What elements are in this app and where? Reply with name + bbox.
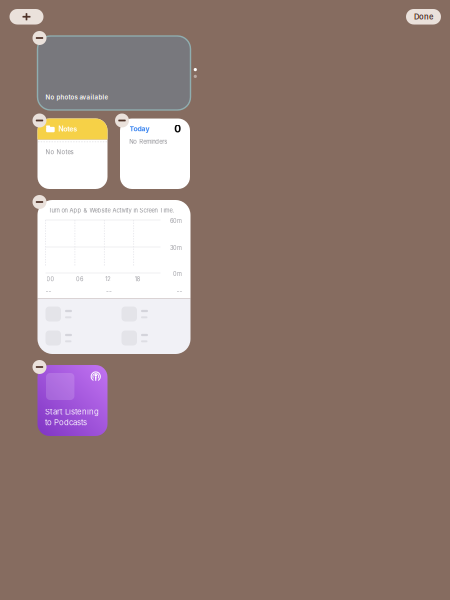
staticText: No Notes (45, 148, 73, 156)
staticText: 00 (46, 276, 54, 283)
button[interactable]: Remove widget (32, 195, 46, 209)
staticText: 18 (135, 276, 140, 283)
button[interactable]: Done (406, 9, 441, 24)
staticText: 0 (174, 123, 181, 135)
staticText: No Reminders (129, 138, 167, 145)
staticText: 30m (170, 245, 182, 251)
staticText: Turn on App & Website Activity in Screen… (48, 207, 174, 214)
staticText: 60m (170, 218, 182, 224)
staticText: 06 (76, 276, 83, 283)
staticText: Start Listening (45, 407, 99, 416)
button[interactable]: Remove widget (32, 113, 46, 127)
staticText: No photos available (45, 94, 108, 101)
staticText: -- (176, 287, 182, 295)
button[interactable]: Remove widget (32, 360, 46, 374)
staticText: 0m (173, 271, 182, 277)
staticText: to Podcasts (45, 418, 87, 427)
staticText: Notes (58, 125, 77, 133)
staticText: -- (106, 287, 112, 295)
staticText: Today (129, 125, 149, 133)
staticText: -- (45, 287, 51, 295)
button[interactable]: Remove widget (115, 113, 129, 127)
staticText: 12 (105, 276, 110, 283)
staticText: Done (414, 12, 433, 21)
button[interactable]: Add widget (9, 9, 43, 24)
button[interactable]: Remove widget (32, 31, 46, 45)
